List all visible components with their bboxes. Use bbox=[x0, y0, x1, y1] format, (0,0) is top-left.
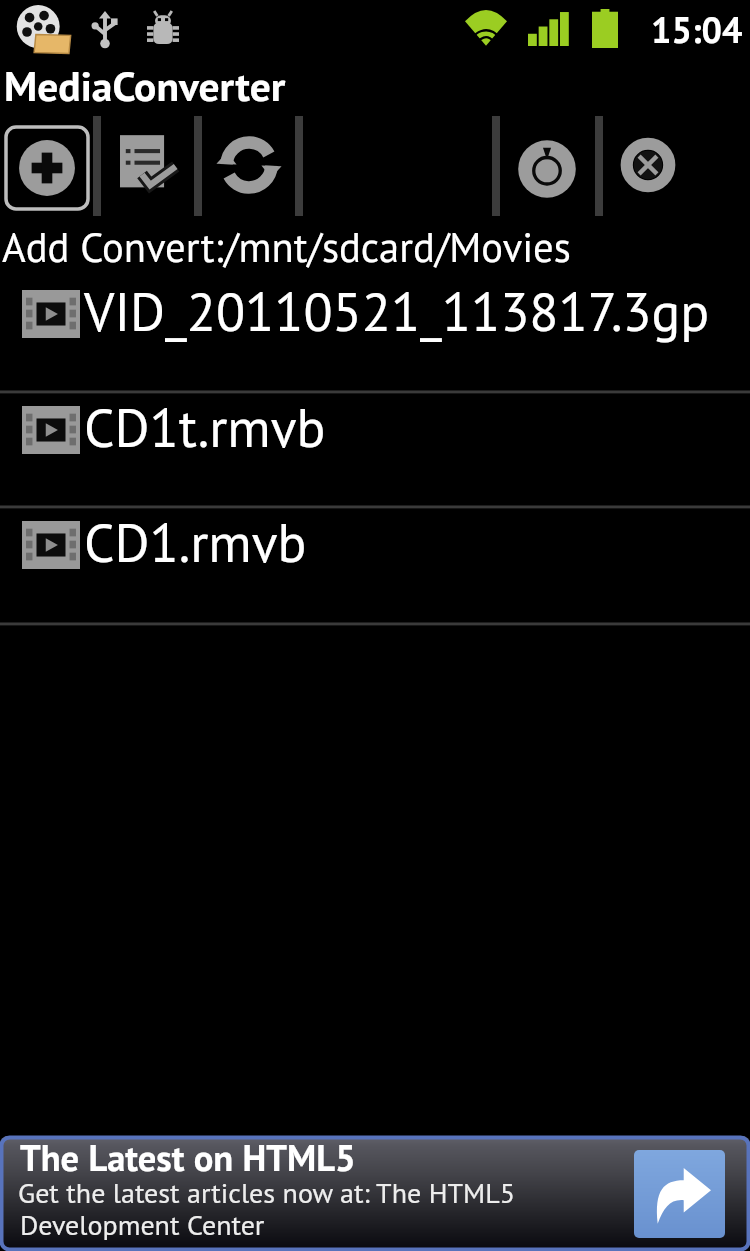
button[interactable]: CD1t.rmvb bbox=[0, 394, 750, 505]
button[interactable]: Add bbox=[4, 125, 90, 211]
button[interactable]: Cancel bbox=[619, 136, 677, 194]
staticText: MediaConverter bbox=[4, 59, 286, 113]
staticText: CD1t.rmvb bbox=[84, 393, 326, 462]
staticText: Get the latest articles now at: The HTML… bbox=[18, 1174, 515, 1210]
staticText: The Latest on HTML5 bbox=[20, 1134, 356, 1181]
staticText: CD1.rmvb bbox=[84, 508, 307, 577]
staticText: 15:04 bbox=[651, 6, 743, 53]
button[interactable]: Select list bbox=[120, 134, 178, 192]
button[interactable]: Start conversion bbox=[517, 139, 577, 199]
button[interactable]: The Latest on HTML5 bbox=[0, 1136, 750, 1251]
staticText: Development Center bbox=[20, 1206, 265, 1242]
button[interactable]: Refresh bbox=[219, 135, 279, 195]
staticText: Add Convert:/mnt/sdcard/Movies bbox=[2, 221, 571, 274]
staticText: VID_20110521_113817.3gp bbox=[84, 277, 710, 346]
button[interactable]: CD1.rmvb bbox=[0, 509, 750, 622]
button[interactable]: VID_20110521_113817.3gp bbox=[0, 274, 750, 390]
button[interactable]: Open advertisement bbox=[634, 1150, 725, 1238]
